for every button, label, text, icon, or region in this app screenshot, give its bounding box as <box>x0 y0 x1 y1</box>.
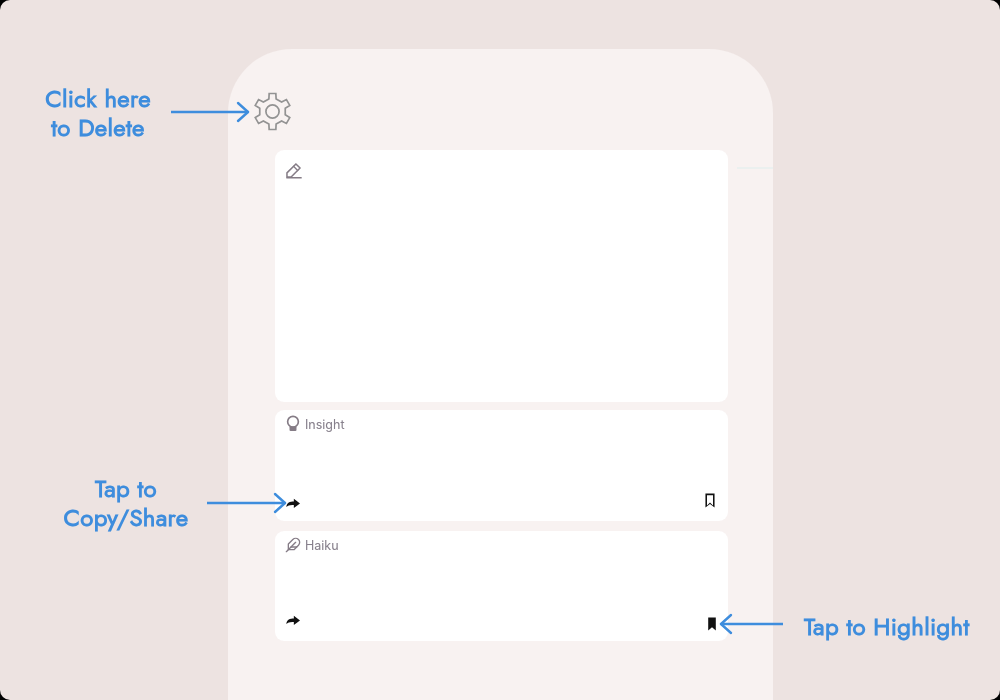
button[interactable]: Copy or Share <box>286 497 300 508</box>
other: Edit <box>286 162 302 178</box>
button[interactable]: Copy or Share <box>286 614 300 625</box>
button[interactable]: Insight <box>275 410 728 521</box>
button[interactable]: Highlight <box>704 493 716 508</box>
staticText: Tap to Copy/Share <box>56 471 196 535</box>
staticText: Tap to Highlight <box>804 609 979 644</box>
staticText: Haiku <box>305 538 339 553</box>
staticText: Click here to Delete <box>38 81 158 145</box>
button[interactable]: Delete <box>254 93 291 130</box>
button[interactable]: Edit <box>275 150 728 402</box>
button[interactable]: Highlight <box>707 617 717 631</box>
button[interactable]: Haiku <box>275 531 728 641</box>
staticText: Insight <box>305 417 345 432</box>
